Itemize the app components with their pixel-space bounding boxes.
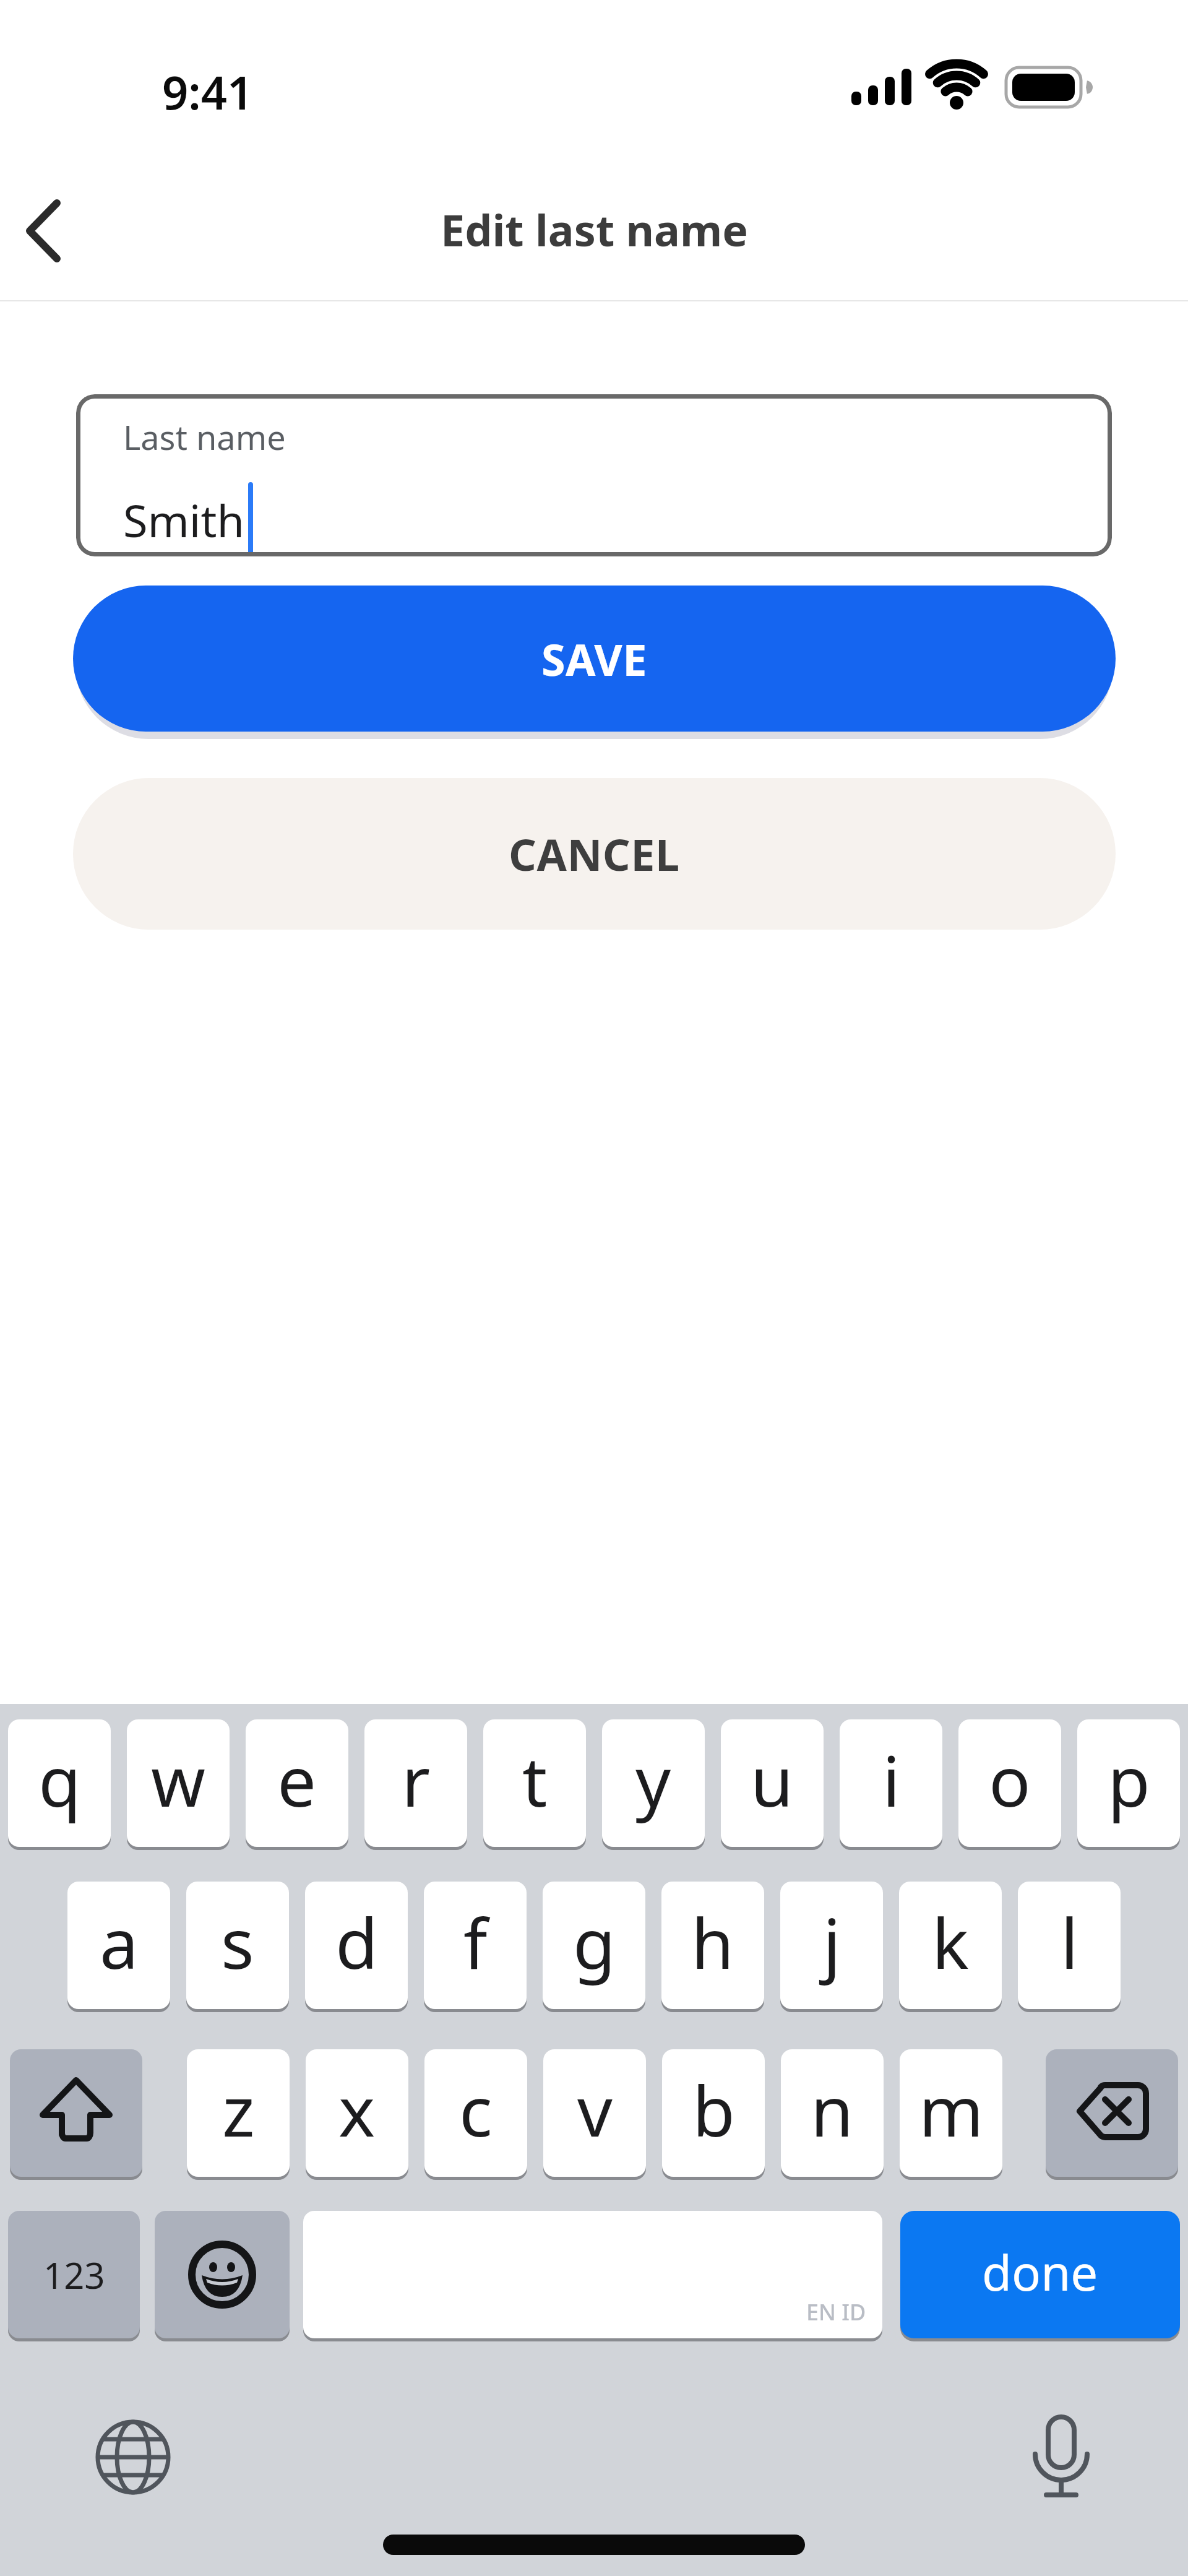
staticText: m	[919, 2062, 984, 2157]
staticText: 123	[43, 2250, 105, 2299]
button[interactable]: CANCEL	[73, 778, 1116, 930]
staticText: EN ID	[806, 2297, 866, 2327]
staticText: l	[1061, 1895, 1078, 1989]
button[interactable]: 123	[8, 2211, 140, 2338]
staticText: v	[577, 2062, 613, 2157]
staticText: CANCEL	[509, 824, 680, 883]
button[interactable]: y	[602, 1719, 705, 1847]
staticText: n	[811, 2062, 854, 2157]
staticText: s	[221, 1895, 254, 1989]
button[interactable]: s	[186, 1882, 289, 2009]
staticText: Last name	[123, 414, 286, 460]
button[interactable]: x	[306, 2049, 408, 2177]
button[interactable]: h	[661, 1882, 764, 2009]
button[interactable]: SAVE	[73, 586, 1116, 732]
button[interactable]: d	[305, 1882, 408, 2009]
staticText: i	[882, 1732, 900, 1827]
button[interactable]: o	[958, 1719, 1061, 1847]
button[interactable]: n	[781, 2049, 884, 2177]
staticText: h	[691, 1895, 734, 1989]
button[interactable]	[12, 186, 87, 279]
button[interactable]	[155, 2211, 290, 2338]
staticText: d	[335, 1895, 378, 1989]
staticText: x	[338, 2062, 376, 2157]
staticText: a	[100, 1895, 139, 1989]
staticText: j	[823, 1895, 841, 1989]
button[interactable]: p	[1077, 1719, 1180, 1847]
button[interactable]: b	[662, 2049, 765, 2177]
button[interactable]: Last name	[76, 394, 1112, 556]
button[interactable]: v	[543, 2049, 646, 2177]
button[interactable]: e	[246, 1719, 348, 1847]
staticText: t	[522, 1732, 548, 1827]
button[interactable]: i	[840, 1719, 942, 1847]
staticText: w	[151, 1732, 206, 1827]
staticText: b	[692, 2062, 735, 2157]
staticText: p	[1108, 1732, 1150, 1827]
staticText: c	[459, 2062, 493, 2157]
staticText: SAVE	[541, 629, 647, 688]
button[interactable]: q	[8, 1719, 111, 1847]
button[interactable]: done	[900, 2211, 1180, 2338]
button[interactable]: z	[187, 2049, 290, 2177]
button[interactable]: c	[424, 2049, 527, 2177]
button[interactable]: t	[483, 1719, 586, 1847]
button[interactable]: k	[899, 1882, 1002, 2009]
staticText: f	[463, 1895, 488, 1989]
staticText: k	[932, 1895, 969, 1989]
staticText: g	[573, 1895, 616, 1989]
staticText: o	[989, 1732, 1031, 1827]
button[interactable]: m	[900, 2049, 1002, 2177]
button[interactable]: EN ID	[303, 2211, 882, 2338]
button[interactable]: w	[127, 1719, 230, 1847]
button[interactable]: l	[1018, 1882, 1121, 2009]
button[interactable]	[10, 2049, 142, 2177]
button[interactable]: j	[780, 1882, 883, 2009]
button[interactable]	[1046, 2049, 1178, 2177]
staticText: z	[222, 2062, 255, 2157]
button[interactable]: u	[721, 1719, 824, 1847]
staticText: r	[402, 1732, 431, 1827]
staticText: Edit last name	[441, 200, 748, 259]
staticText: Smith	[123, 490, 244, 550]
button[interactable]: f	[424, 1882, 527, 2009]
staticText: e	[277, 1732, 317, 1827]
button[interactable]: r	[364, 1719, 467, 1847]
staticText: q	[38, 1732, 81, 1827]
staticText: y	[635, 1732, 671, 1827]
button[interactable]: a	[67, 1882, 170, 2009]
button[interactable]	[88, 2413, 178, 2502]
staticText: done	[982, 2239, 1098, 2305]
staticText: 9:41	[162, 61, 254, 123]
button[interactable]: g	[543, 1882, 645, 2009]
button[interactable]	[1018, 2411, 1104, 2510]
staticText: u	[751, 1732, 794, 1827]
